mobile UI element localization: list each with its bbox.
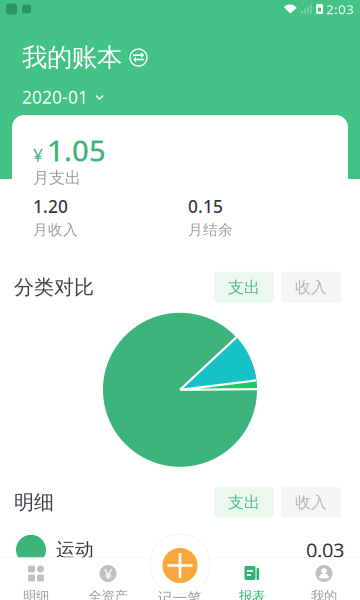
staticText: 0.15 (188, 195, 223, 218)
staticText: ¥ (104, 564, 112, 583)
staticText: 1.20 (33, 195, 68, 218)
staticText: 月收入 (33, 221, 78, 239)
button[interactable]: 我的 (288, 557, 360, 600)
button[interactable]: 明细 (0, 557, 72, 600)
staticText: ¥ (33, 144, 43, 167)
button[interactable]: 报表 (216, 557, 288, 600)
staticText: 0.03 (306, 536, 344, 563)
button[interactable]: 支出 (214, 272, 274, 303)
staticText: 1.05 (47, 131, 106, 170)
staticText: 明细 (23, 588, 49, 600)
staticText: 月支出 (33, 168, 81, 188)
staticText: 月结余 (188, 221, 233, 239)
staticText: 支出 (228, 492, 260, 512)
button[interactable]: 支出 (214, 487, 274, 518)
staticText: 运动 (56, 538, 94, 561)
staticText: 分类对比 (14, 275, 94, 300)
staticText: 记一笔 (157, 589, 202, 600)
staticText: 支出 (228, 277, 260, 297)
staticText: 全资产 (88, 588, 127, 600)
staticText: 收入 (295, 492, 327, 512)
button[interactable]: 收入 (281, 487, 341, 518)
button[interactable]: 收入 (281, 272, 341, 303)
staticText: 收入 (295, 277, 327, 297)
staticText: 2020-01 (22, 86, 88, 109)
staticText: 明细 (14, 490, 54, 515)
staticText: 报表 (239, 588, 265, 600)
button[interactable]: ¥ (72, 557, 144, 600)
staticText: 我的账本 (22, 42, 122, 73)
button[interactable]: 记一笔 (144, 557, 216, 600)
button[interactable]: 2020-01 (0, 89, 360, 105)
staticText: 我的 (311, 588, 337, 600)
staticText: 2:03 (326, 0, 354, 18)
